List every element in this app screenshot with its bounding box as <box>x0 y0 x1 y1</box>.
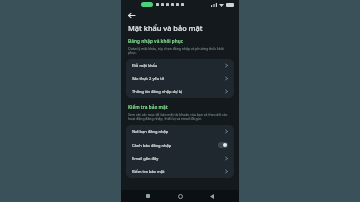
button[interactable]: Email gần đây <box>126 152 234 165</box>
staticText: Xem xét các mục để bảo mật tài khoản của… <box>128 112 230 121</box>
staticText: Mật khẩu và bảo mật <box>128 23 203 33</box>
staticText: Nơi bạn đăng nhập <box>132 129 222 134</box>
button[interactable]: Đổi mật khẩu <box>126 59 234 72</box>
button[interactable]: Home <box>175 191 185 201</box>
button[interactable]: Nơi bạn đăng nhập <box>126 125 234 138</box>
staticText: Đổi mật khẩu <box>132 63 222 68</box>
staticText: Kiểm tra bảo mật <box>128 104 168 110</box>
button[interactable]: Recent apps <box>143 191 153 201</box>
staticText: Kiểm tra bảo mật <box>132 169 222 174</box>
staticText: Email gần đây <box>132 156 222 161</box>
button[interactable]: Back <box>207 191 217 201</box>
staticText: Xác thực 2 yếu tố <box>132 76 222 81</box>
staticText: Thông tin đăng nhập dự bị <box>132 89 222 94</box>
button[interactable]: Xác thực 2 yếu tố <box>126 72 234 85</box>
staticText: Quản lý mật khẩu, tùy chọn đăng nhập và … <box>128 46 230 55</box>
button[interactable]: Cảnh báo đăng nhập <box>126 138 234 152</box>
staticText: Cảnh báo đăng nhập <box>132 143 215 148</box>
staticText: Đăng nhập và khôi phục <box>128 38 184 44</box>
button[interactable]: Thông tin đăng nhập dự bị <box>126 85 234 98</box>
button[interactable]: Back <box>125 9 138 22</box>
button[interactable]: Kiểm tra bảo mật <box>126 165 234 178</box>
